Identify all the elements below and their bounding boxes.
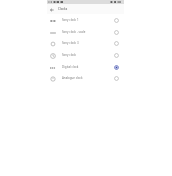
button[interactable]: Analogue clock — [47, 72, 124, 84]
button[interactable]: Digital clock — [47, 61, 124, 73]
staticText: Analogue clock — [62, 76, 83, 80]
button[interactable]: Sony clock — [47, 49, 124, 61]
button[interactable]: Sony clock 1 — [47, 14, 124, 26]
staticText: Digital clock — [62, 65, 79, 69]
staticText: Clocks — [58, 7, 68, 11]
staticText: Sony clock - scale — [62, 30, 86, 34]
button[interactable]: Back — [47, 5, 56, 14]
staticText: Sony clock — [62, 53, 77, 57]
staticText: Sony clock 3 — [62, 41, 79, 45]
button[interactable]: Sony clock 3 — [47, 37, 124, 49]
button[interactable]: Sony clock - scale — [47, 26, 124, 38]
staticText: Sony clock 1 — [62, 18, 79, 22]
